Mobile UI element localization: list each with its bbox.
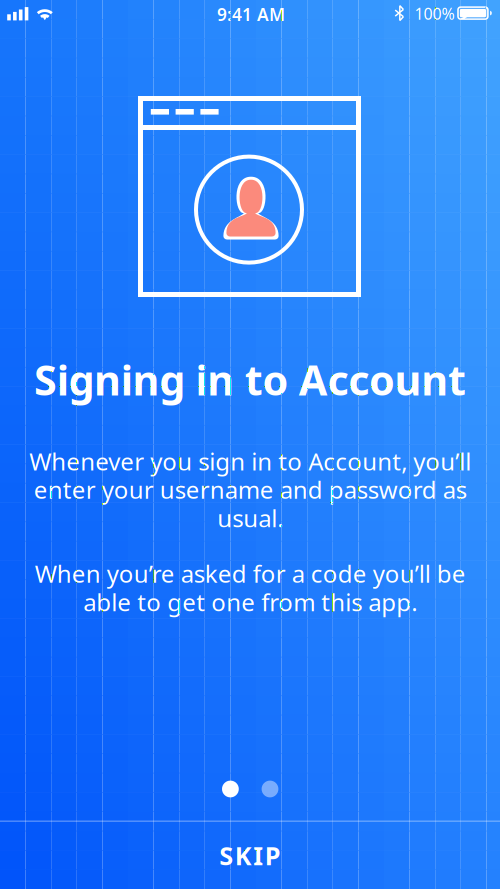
staticText: SKIP: [219, 839, 281, 872]
staticText: Whenever you sign in to Account, you’ll …: [29, 445, 471, 534]
staticText: When you’re asked for a code you’ll be a…: [34, 558, 465, 618]
staticText: Signing in to Account: [34, 352, 466, 407]
button[interactable]: SKIP: [0, 822, 500, 889]
staticText: 9:41 AM: [217, 3, 285, 26]
staticText: 100%: [414, 3, 454, 24]
